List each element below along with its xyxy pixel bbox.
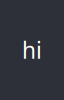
staticText: hi <box>22 35 42 65</box>
